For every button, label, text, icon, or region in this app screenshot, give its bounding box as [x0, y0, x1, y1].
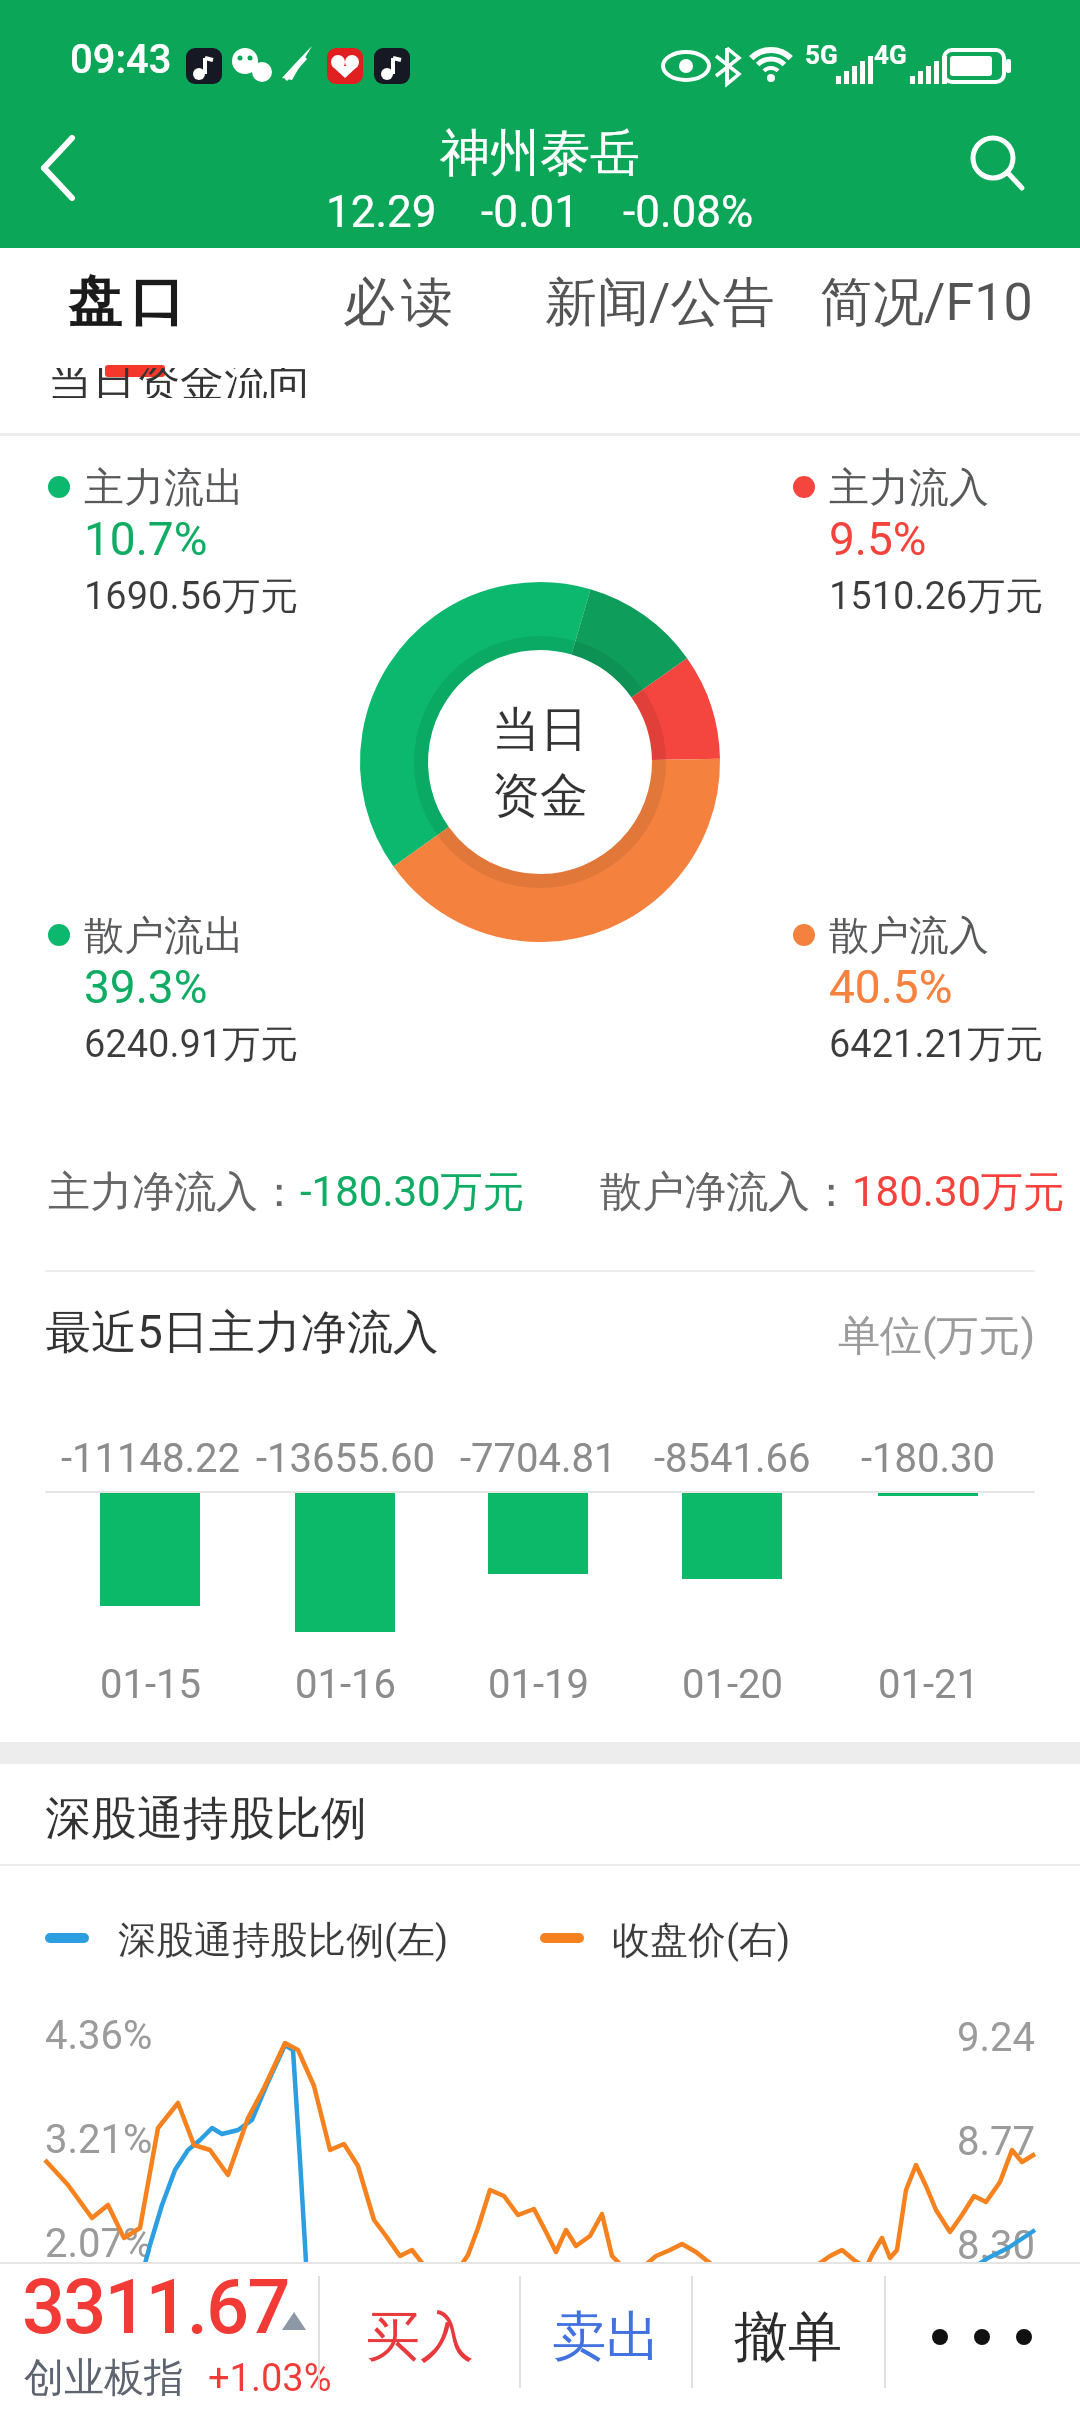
button[interactable]: 盘口	[64, 268, 188, 336]
button[interactable]	[24, 130, 94, 206]
staticText: +1.03%	[208, 2356, 332, 2401]
staticText: 散户流入	[829, 910, 989, 960]
staticText: 深股通持股比例(左)	[118, 1916, 449, 1964]
staticText: 卖出	[552, 2303, 660, 2371]
staticText: 当日资金流向	[48, 368, 312, 398]
staticText: 当日	[492, 700, 588, 760]
staticText: 1690.56万元	[84, 572, 299, 620]
button[interactable]	[960, 125, 1040, 205]
button[interactable]: 买入	[320, 2262, 520, 2412]
staticText: 09:43	[70, 36, 172, 83]
staticText: 资金	[492, 766, 588, 826]
staticText: 6421.21万元	[829, 1020, 1044, 1068]
staticText: 创业板指	[24, 2352, 184, 2402]
staticText: 3.21%	[45, 2116, 153, 2163]
staticText: -180.30万元	[300, 1166, 525, 1219]
staticText: 01-19	[488, 1661, 589, 1708]
staticText: -0.01	[481, 186, 579, 238]
button[interactable]: 撤单	[693, 2262, 883, 2412]
staticText: 撤单	[734, 2303, 842, 2371]
staticText: -11148.22	[61, 1435, 240, 1482]
staticText: 4.36%	[45, 2012, 153, 2059]
staticText: 40.5%	[829, 960, 953, 1014]
staticText: 神州泰岳	[440, 122, 640, 182]
button[interactable]	[884, 2262, 1080, 2412]
staticText: 180.30万元	[852, 1166, 1066, 1219]
staticText: -180.30	[861, 1435, 996, 1482]
staticText: -7704.81	[460, 1435, 617, 1482]
staticText: 单位(万元)	[838, 1310, 1035, 1363]
button[interactable]: 必读	[340, 270, 456, 336]
staticText: -8541.66	[654, 1435, 811, 1482]
staticText: 3311.67	[22, 2262, 289, 2351]
staticText: 01-21	[878, 1661, 979, 1708]
staticText: 39.3%	[84, 960, 208, 1014]
staticText: 10.7%	[84, 512, 208, 566]
button[interactable]: 3311.67	[0, 2262, 318, 2412]
staticText: -13655.60	[256, 1435, 435, 1482]
button[interactable]: 卖出	[521, 2262, 691, 2412]
staticText: 12.29	[326, 186, 437, 238]
staticText: 1510.26万元	[829, 572, 1044, 620]
staticText: 8.30	[957, 2222, 1035, 2269]
staticText: -0.08%	[623, 186, 754, 238]
staticText: 4G	[874, 40, 907, 70]
staticText: 买入	[366, 2303, 474, 2371]
staticText: 9.24	[957, 2014, 1035, 2061]
staticText: 6240.91万元	[84, 1020, 299, 1068]
staticText: 散户净流入：	[600, 1166, 852, 1219]
staticText: 9.5%	[829, 512, 927, 566]
staticText: 最近5日主力净流入	[45, 1304, 439, 1362]
button[interactable]: 新闻/公告	[545, 270, 775, 336]
staticText: 主力流入	[829, 462, 989, 512]
staticText: 收盘价(右)	[612, 1916, 791, 1964]
staticText: 01-15	[100, 1661, 201, 1708]
staticText: 01-20	[682, 1661, 783, 1708]
staticText: 2.07%	[45, 2220, 153, 2267]
staticText: 散户流出	[84, 910, 244, 960]
staticText: 深股通持股比例	[45, 1790, 367, 1848]
staticText: 8.77	[957, 2118, 1035, 2165]
staticText: 主力流出	[84, 462, 244, 512]
staticText: 5G	[805, 40, 838, 70]
staticText: 01-16	[295, 1661, 396, 1708]
button[interactable]: 简况/F10	[820, 270, 1033, 336]
staticText: 主力净流入：	[48, 1166, 300, 1219]
